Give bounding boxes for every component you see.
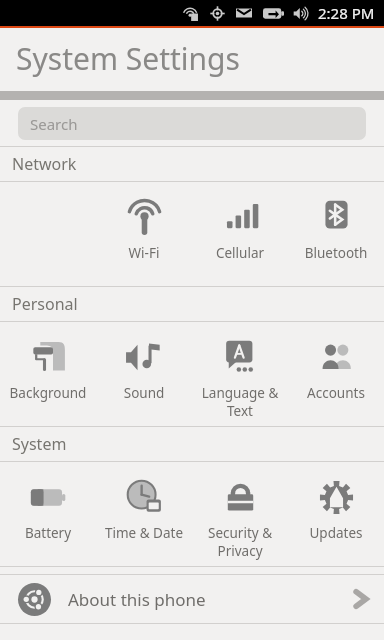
staticText: Bluetooth (288, 244, 384, 262)
button[interactable]: Battery (0, 462, 96, 566)
staticText: Updates (288, 524, 384, 542)
other: Volume (293, 6, 310, 21)
staticText: About this phone (68, 588, 338, 611)
staticText: Language & Text (192, 384, 288, 420)
other: Network signal (183, 5, 200, 22)
staticText: Sound (96, 384, 192, 402)
staticText: Search (30, 114, 78, 134)
button[interactable]: Cellular (192, 182, 288, 286)
button[interactable]: Sound (96, 322, 192, 426)
staticText: System (12, 433, 67, 455)
staticText: Cellular (192, 244, 288, 262)
staticText: Background (0, 384, 96, 402)
staticText: Security & Privacy (192, 524, 288, 560)
staticText: 2:28 PM (318, 3, 375, 23)
staticText: Time & Date (96, 524, 192, 542)
button[interactable]: Wi-Fi (96, 182, 192, 286)
button[interactable]: Security & Privacy (192, 462, 288, 566)
staticText: Battery (0, 524, 96, 542)
button[interactable]: Accounts (288, 322, 384, 426)
staticText: System Settings (16, 38, 240, 79)
button[interactable]: Background (0, 322, 96, 426)
other: Location (210, 6, 225, 21)
button[interactable]: Search (18, 107, 366, 140)
other: Messages (236, 6, 252, 20)
other: Open (349, 587, 373, 611)
staticText: Personal (12, 293, 78, 315)
button[interactable]: Language & Text (192, 322, 288, 426)
button[interactable]: Bluetooth (288, 182, 384, 286)
staticText: Wi-Fi (96, 244, 192, 262)
staticText: Accounts (288, 384, 384, 402)
button[interactable]: About this phone (0, 575, 384, 623)
button[interactable]: Updates (288, 462, 384, 566)
staticText: Network (12, 153, 77, 175)
other: Battery (263, 7, 284, 20)
button[interactable]: Time & Date (96, 462, 192, 566)
